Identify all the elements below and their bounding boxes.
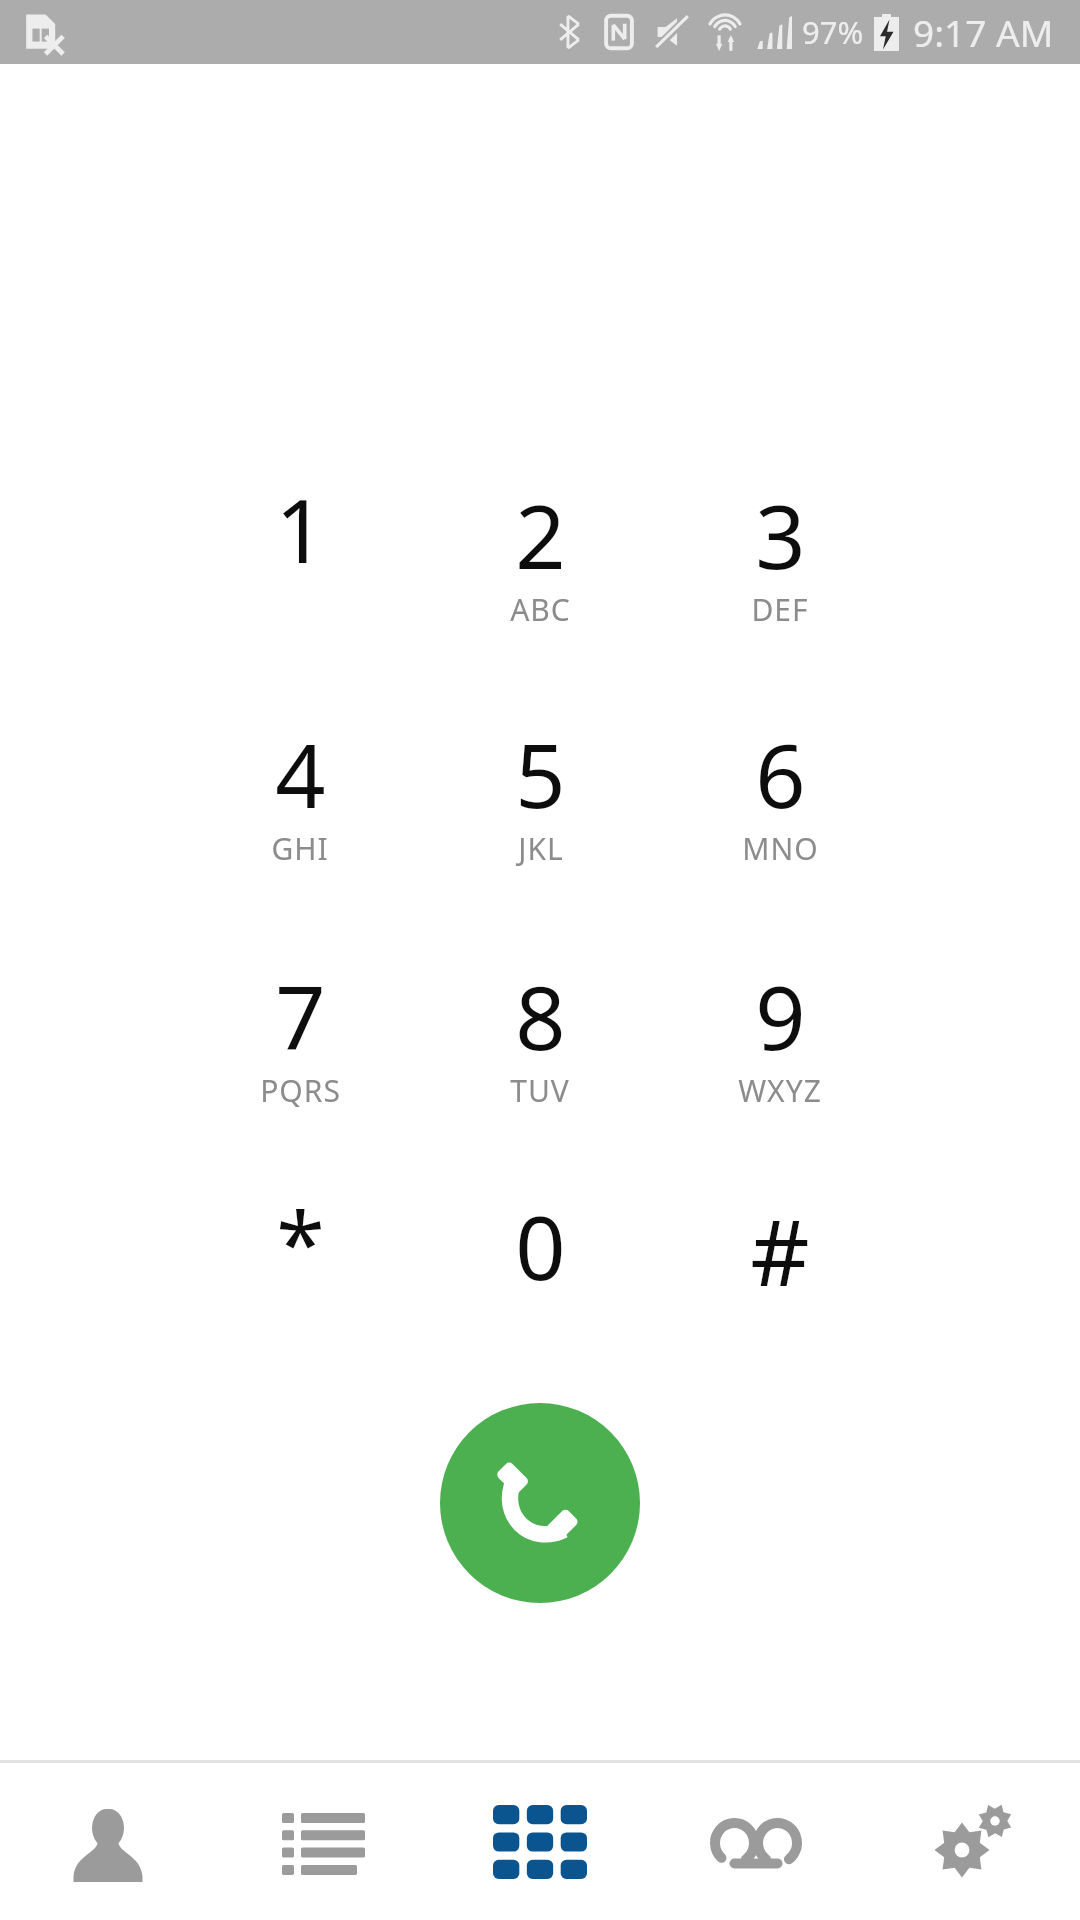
staticText: 7 xyxy=(275,956,326,1076)
button[interactable]: 5 xyxy=(420,694,660,894)
staticText: 1 xyxy=(275,469,326,589)
button[interactable]: 7 xyxy=(180,936,420,1136)
staticText: 97% xyxy=(802,11,864,53)
staticText: * xyxy=(276,1182,325,1302)
button[interactable]: 3 xyxy=(660,455,900,655)
button[interactable]: Keypad xyxy=(432,1763,648,1920)
button[interactable]: # xyxy=(660,1172,900,1372)
button[interactable]: 6 xyxy=(660,694,900,894)
staticText: MNO xyxy=(742,828,819,869)
staticText: 9 xyxy=(755,956,806,1076)
button[interactable]: * xyxy=(180,1172,420,1372)
button[interactable]: 9 xyxy=(660,936,900,1136)
staticText: 0 xyxy=(515,1186,566,1306)
staticText: 9:17 AM xyxy=(913,7,1054,57)
button[interactable]: Settings xyxy=(864,1763,1080,1920)
staticText: JKL xyxy=(518,828,564,869)
staticText: DEF xyxy=(751,589,809,630)
staticText: GHI xyxy=(271,828,329,869)
staticText: 5 xyxy=(515,714,566,834)
staticText: 2 xyxy=(515,475,566,595)
staticText: ABC xyxy=(510,589,571,630)
staticText: 8 xyxy=(515,956,566,1076)
button[interactable]: 1 xyxy=(180,455,420,655)
button[interactable]: Call logs xyxy=(216,1763,432,1920)
staticText: 3 xyxy=(755,475,806,595)
button[interactable]: Voicemail xyxy=(648,1763,864,1920)
staticText: TUV xyxy=(510,1070,570,1111)
button[interactable]: 2 xyxy=(420,455,660,655)
button[interactable]: 0 xyxy=(420,1172,660,1372)
staticText: PQRS xyxy=(260,1070,341,1111)
staticText: # xyxy=(750,1188,810,1313)
button[interactable]: Contacts xyxy=(0,1763,216,1920)
staticText: 6 xyxy=(755,714,806,834)
button[interactable]: Call xyxy=(440,1403,640,1603)
staticText: WXYZ xyxy=(738,1070,822,1111)
button[interactable]: 8 xyxy=(420,936,660,1136)
button[interactable]: 4 xyxy=(180,694,420,894)
staticText: 4 xyxy=(275,714,326,834)
